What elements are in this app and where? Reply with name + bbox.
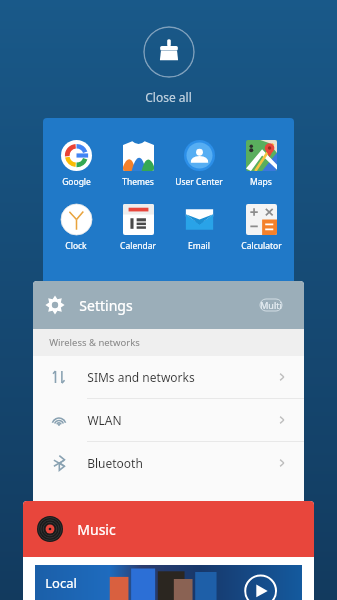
staticText: Bluetooth	[87, 455, 143, 471]
button[interactable]: Close all	[143, 26, 195, 78]
staticText: Themes	[122, 176, 154, 188]
button[interactable]: Themes	[110, 140, 166, 188]
button[interactable]: Multi	[250, 296, 292, 314]
button[interactable]: Google	[43, 118, 294, 286]
staticText: Wireless & networks	[49, 336, 140, 349]
button[interactable]: Clock	[48, 204, 104, 252]
staticText: Settings	[79, 296, 133, 315]
button[interactable]: Calculator	[233, 204, 289, 252]
staticText: Close all	[145, 89, 192, 105]
staticText: Maps	[250, 176, 272, 188]
staticText: User Center	[175, 176, 223, 188]
staticText: Google	[62, 176, 91, 188]
staticText: Email	[188, 240, 210, 252]
button[interactable]: Maps	[233, 140, 289, 188]
button[interactable]: Google	[48, 140, 104, 188]
staticText: Multi	[260, 299, 282, 311]
button[interactable]: User Center	[171, 140, 227, 188]
button[interactable]: SIMs and networks	[33, 356, 304, 398]
button[interactable]: Music	[23, 501, 314, 557]
button[interactable]: Local	[35, 565, 302, 600]
button[interactable]: Calendar	[110, 204, 166, 252]
staticText: SIMs and networks	[87, 369, 195, 385]
staticText: Local	[45, 574, 77, 592]
button[interactable]: WLAN	[33, 399, 304, 441]
staticText: Clock	[65, 240, 87, 252]
button[interactable]: Bluetooth	[33, 442, 304, 484]
button[interactable]: Email	[171, 204, 227, 252]
staticText: Calendar	[120, 240, 156, 252]
staticText: WLAN	[87, 412, 122, 428]
button[interactable]: Settings	[33, 281, 304, 329]
staticText: Music	[77, 520, 116, 539]
staticText: Calculator	[241, 240, 282, 252]
